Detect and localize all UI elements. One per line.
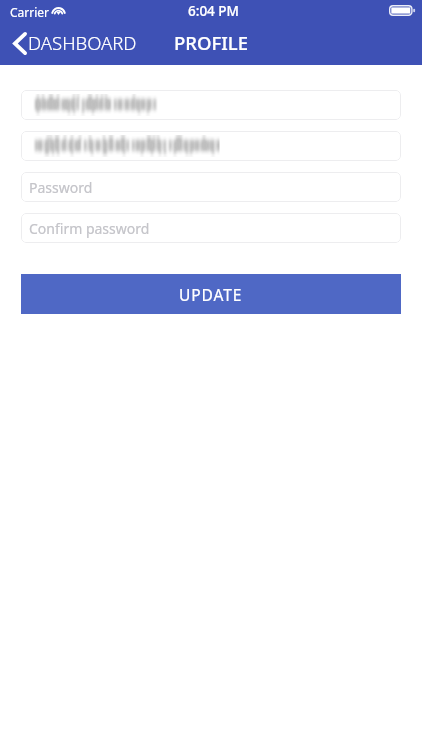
staticText: Confirm password bbox=[29, 219, 150, 238]
button[interactable]: Back bbox=[13, 31, 137, 56]
staticText: 6:04 PM bbox=[188, 2, 239, 20]
button[interactable]: UPDATE bbox=[21, 274, 401, 314]
button[interactable] bbox=[21, 90, 401, 120]
staticText: UPDATE bbox=[179, 284, 243, 305]
button[interactable] bbox=[21, 131, 401, 161]
staticText: PROFILE bbox=[174, 30, 248, 55]
button[interactable]: Confirm password bbox=[21, 213, 401, 243]
staticText: DASHBOARD bbox=[28, 30, 137, 55]
button[interactable]: Password bbox=[21, 172, 401, 202]
staticText: Carrier bbox=[10, 4, 50, 20]
other: Back bbox=[13, 32, 27, 55]
staticText: Password bbox=[29, 178, 93, 197]
